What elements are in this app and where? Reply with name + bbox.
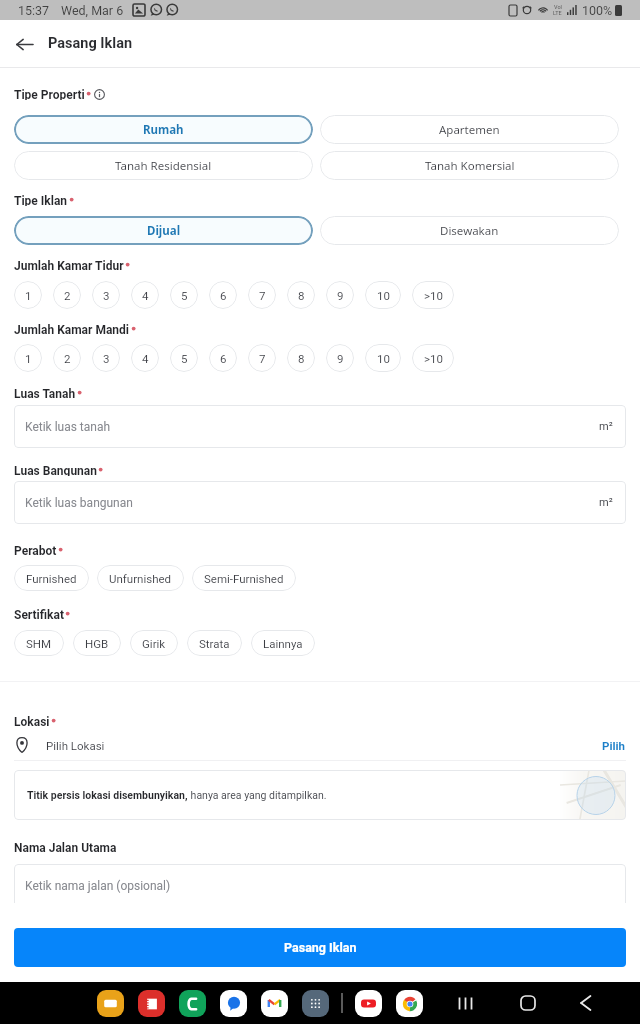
staticText: Vol xyxy=(554,4,562,10)
staticText: Disewakan xyxy=(440,223,499,239)
staticText: >10 xyxy=(424,352,443,365)
button[interactable]: Gmail xyxy=(261,990,288,1017)
staticText: 4 xyxy=(142,289,149,302)
staticText: 8 xyxy=(298,289,305,302)
staticText: Rumah xyxy=(143,122,184,138)
button[interactable]: Ketik luas bangunan xyxy=(14,481,626,524)
staticText: 7 xyxy=(259,352,266,365)
staticText: LTE xyxy=(553,10,562,16)
staticText: hanya area yang ditampilkan. xyxy=(188,789,327,801)
button[interactable]: Home xyxy=(511,986,545,1020)
button[interactable]: 8 xyxy=(287,344,315,372)
button[interactable]: 2 xyxy=(53,281,81,309)
button[interactable]: Phone xyxy=(179,990,206,1017)
staticText: 6 xyxy=(220,289,227,302)
staticText: 100% xyxy=(582,3,613,18)
staticText: Strata xyxy=(199,637,230,650)
button[interactable]: 4 xyxy=(131,344,159,372)
staticText: Ketik luas bangunan xyxy=(25,496,133,510)
staticText: Unfurnished xyxy=(109,572,172,585)
button[interactable]: 9 xyxy=(326,281,354,309)
button[interactable]: 2 xyxy=(53,344,81,372)
staticText: 9 xyxy=(337,289,344,302)
button[interactable]: 9 xyxy=(326,344,354,372)
staticText: 10 xyxy=(377,289,390,302)
staticText: SHM xyxy=(26,637,52,650)
button[interactable]: Ketik nama jalan (opsional) xyxy=(14,864,626,907)
button[interactable]: 6 xyxy=(209,344,237,372)
button[interactable]: YouTube xyxy=(355,990,382,1017)
button[interactable]: Furnished xyxy=(14,565,89,591)
staticText: 2 xyxy=(64,352,71,365)
button[interactable]: Disewakan xyxy=(320,216,619,245)
button[interactable]: 7 xyxy=(248,344,276,372)
staticText: Perabot xyxy=(14,544,57,556)
button[interactable]: My Files xyxy=(97,990,124,1017)
button[interactable]: 6 xyxy=(209,281,237,309)
button[interactable]: 1 xyxy=(14,344,42,372)
button[interactable]: Notes xyxy=(138,990,165,1017)
button[interactable]: 10 xyxy=(365,281,401,309)
staticText: 6 xyxy=(220,352,227,365)
button[interactable]: 4 xyxy=(131,281,159,309)
staticText: 10 xyxy=(377,352,390,365)
button[interactable]: 3 xyxy=(92,281,120,309)
staticText: 9 xyxy=(337,352,344,365)
staticText: HGB xyxy=(85,637,109,650)
button[interactable]: Rumah xyxy=(14,115,313,144)
staticText: Luas Bangunan xyxy=(14,464,97,476)
staticText: Pasang Iklan xyxy=(284,940,357,955)
button[interactable]: Tanah Komersial xyxy=(320,151,619,180)
button[interactable]: Semi-Furnished xyxy=(192,565,296,591)
staticText: 1 xyxy=(25,352,32,365)
button[interactable]: Messages xyxy=(220,990,247,1017)
staticText: Wed, Mar 6 xyxy=(61,3,124,18)
staticText: 3 xyxy=(103,352,110,365)
button[interactable]: Chrome xyxy=(396,990,423,1017)
button[interactable]: 3 xyxy=(92,344,120,372)
staticText: Apartemen xyxy=(439,122,500,138)
staticText: Tanah Komersial xyxy=(425,158,515,174)
staticText: Girik xyxy=(142,637,166,650)
button[interactable]: 10 xyxy=(365,344,401,372)
button[interactable]: 5 xyxy=(170,281,198,309)
staticText: 7 xyxy=(259,289,266,302)
button[interactable]: Pilih Lokasi xyxy=(14,734,626,756)
button[interactable]: Ketik luas tanah xyxy=(14,405,626,448)
button[interactable]: Unfurnished xyxy=(97,565,184,591)
button[interactable]: Dijual xyxy=(14,216,313,245)
staticText: 15:37 xyxy=(18,3,50,18)
staticText: Ketik luas tanah xyxy=(25,420,111,434)
staticText: Jumlah Kamar Tidur xyxy=(14,259,124,271)
button[interactable]: Back xyxy=(9,29,39,59)
button[interactable]: HGB xyxy=(73,630,121,656)
button[interactable]: >10 xyxy=(412,281,454,309)
staticText: Tipe Properti xyxy=(14,88,85,100)
button[interactable]: Pasang Iklan xyxy=(14,928,626,967)
staticText: Dijual xyxy=(147,223,181,239)
button[interactable]: Lainnya xyxy=(251,630,315,656)
staticText: m² xyxy=(599,496,613,509)
staticText: 4 xyxy=(142,352,149,365)
staticText: 5 xyxy=(181,289,188,302)
button[interactable]: Back xyxy=(568,986,602,1020)
staticText: Nama Jalan Utama xyxy=(14,841,117,853)
button[interactable]: Girik xyxy=(130,630,178,656)
button[interactable]: Strata xyxy=(187,630,242,656)
button[interactable]: Apartemen xyxy=(320,115,619,144)
staticText: 3 xyxy=(103,289,110,302)
staticText: Lokasi xyxy=(14,715,50,727)
button[interactable]: Tanah Residensial xyxy=(14,151,313,180)
staticText: Pilih Lokasi xyxy=(46,739,105,752)
staticText: Furnished xyxy=(26,572,77,585)
button[interactable]: >10 xyxy=(412,344,454,372)
button[interactable]: Apps xyxy=(302,990,329,1017)
button[interactable]: Recent apps xyxy=(448,986,482,1020)
staticText: Sertifikat xyxy=(14,608,64,620)
button[interactable]: 1 xyxy=(14,281,42,309)
button[interactable]: 7 xyxy=(248,281,276,309)
staticText: 5 xyxy=(181,352,188,365)
button[interactable]: SHM xyxy=(14,630,64,656)
button[interactable]: 5 xyxy=(170,344,198,372)
button[interactable]: 8 xyxy=(287,281,315,309)
